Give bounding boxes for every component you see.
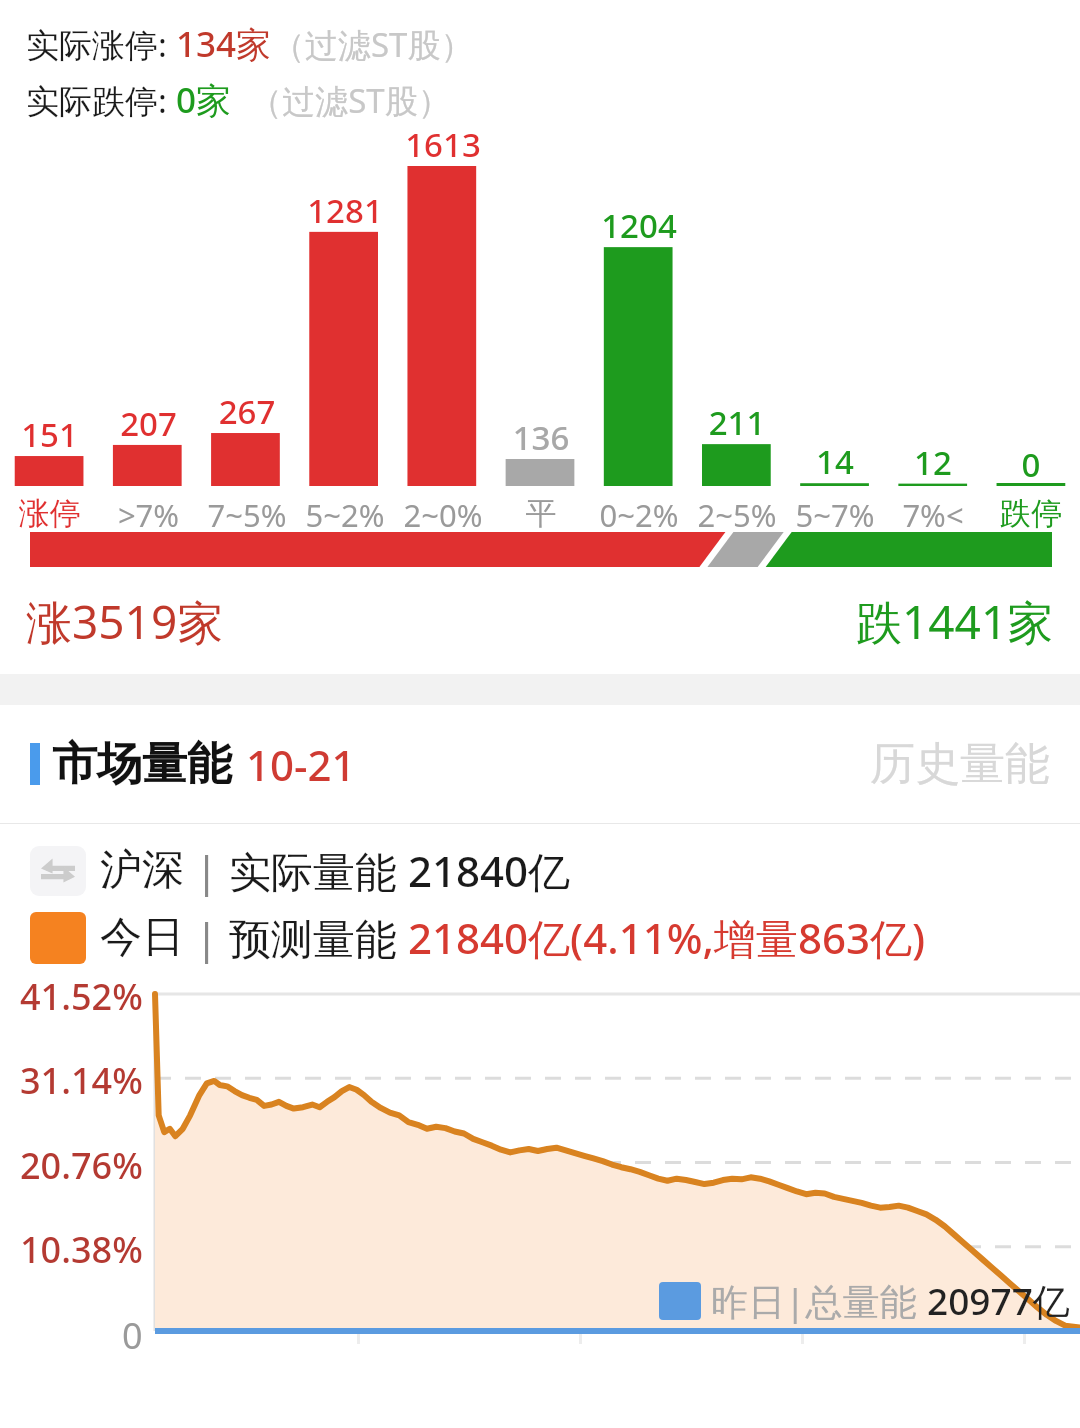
staticText: >7% — [99, 494, 198, 536]
staticText: 0 — [122, 1311, 143, 1360]
staticText: 市场量能 — [52, 736, 232, 793]
staticText: 207 — [99, 401, 198, 446]
staticText: 10-21 — [246, 736, 356, 793]
staticText: 41.52% — [20, 972, 143, 1021]
staticText: 21840亿(4.11%,增量863亿) — [408, 909, 926, 966]
button[interactable] — [30, 524, 1052, 569]
staticText: 实际涨停: — [26, 22, 176, 67]
staticText: （过滤ST股） — [272, 22, 474, 67]
staticText: 0家 — [176, 76, 232, 124]
staticText: 136 — [492, 415, 590, 460]
staticText: 跌1441家 — [856, 590, 1054, 653]
staticText: 涨3519家 — [26, 590, 224, 653]
staticText: 5~2% — [296, 494, 394, 536]
staticText: 5~7% — [786, 494, 884, 536]
staticText: 涨停 — [0, 494, 99, 533]
staticText: 211 — [688, 400, 786, 445]
staticText: 1204 — [590, 203, 688, 248]
staticText: 实际跌停: — [26, 78, 176, 123]
staticText: 151 — [0, 412, 99, 457]
staticText: 实际量能 21840亿 — [229, 842, 571, 899]
staticText: 历史量能 — [870, 736, 1050, 793]
button[interactable]: 历史量能 — [870, 736, 1050, 793]
staticText: 31.14% — [20, 1056, 143, 1105]
staticText: 0~2% — [590, 494, 688, 536]
staticText: 1281 — [296, 188, 394, 233]
staticText: 跌停 — [982, 494, 1080, 533]
staticText: | — [184, 909, 229, 966]
staticText: 20.76% — [20, 1141, 143, 1190]
staticText: 2~5% — [688, 494, 786, 536]
staticText: 2~0% — [394, 494, 492, 536]
staticText: | — [184, 842, 229, 899]
staticText: 12 — [884, 440, 982, 485]
button[interactable]: 沪深切换 — [30, 846, 86, 896]
staticText: （过滤ST股） — [232, 78, 451, 123]
staticText: 134家 — [176, 20, 272, 68]
staticText: 0 — [982, 442, 1080, 487]
staticText: 预测量能 — [229, 909, 408, 966]
staticText: 10.38% — [20, 1225, 143, 1274]
staticText: 1613 — [394, 122, 492, 167]
staticText: 7~5% — [198, 494, 296, 536]
staticText: 平 — [492, 494, 590, 533]
staticText: 今日 — [100, 911, 184, 964]
staticText: 沪深 — [100, 844, 184, 897]
staticText: 14 — [786, 439, 884, 484]
staticText: 昨日|总量能 — [711, 1275, 927, 1326]
staticText: 267 — [198, 389, 296, 434]
staticText: 7%< — [884, 494, 982, 536]
staticText: 20977亿 — [927, 1275, 1070, 1326]
